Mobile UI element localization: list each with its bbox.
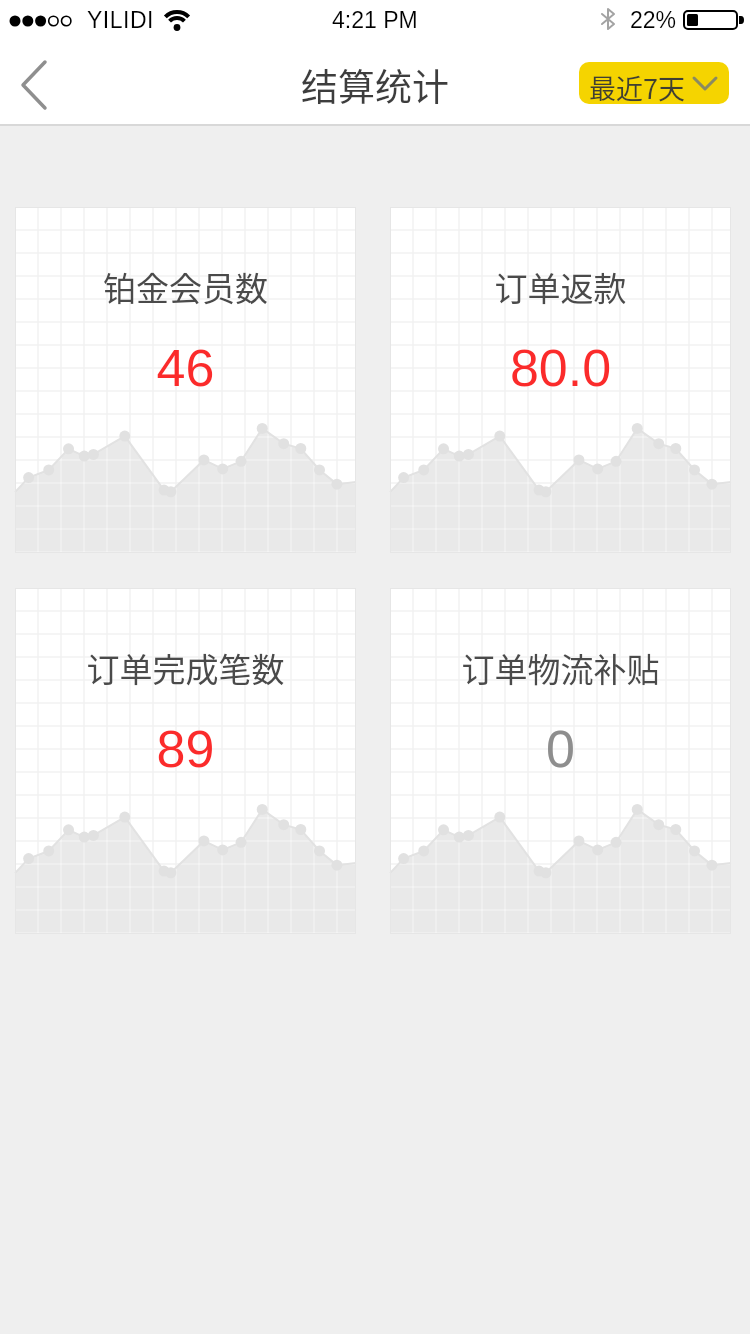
staticText: 0 xyxy=(390,720,731,778)
button[interactable] xyxy=(8,54,64,110)
button[interactable]: 订单完成笔数 xyxy=(15,588,356,934)
staticText: 46 xyxy=(15,339,356,397)
button[interactable]: 订单物流补贴 xyxy=(390,588,731,934)
staticText: 22% xyxy=(630,7,677,33)
staticText: 最近7天 xyxy=(589,68,685,104)
staticText: YILIDI xyxy=(87,7,154,33)
button[interactable]: 订单返款 xyxy=(390,207,731,553)
button[interactable]: 铂金会员数 xyxy=(15,207,356,553)
button[interactable]: 最近7天 xyxy=(579,62,729,104)
staticText: 89 xyxy=(15,720,356,778)
staticText: 铂金会员数 xyxy=(15,263,356,311)
staticText: 结算统计 xyxy=(301,58,449,112)
staticText: 订单完成笔数 xyxy=(15,644,356,692)
staticText: 订单物流补贴 xyxy=(390,644,731,692)
staticText: 订单返款 xyxy=(390,263,731,311)
staticText: 80.0 xyxy=(390,339,731,397)
staticText: 4:21 PM xyxy=(332,7,418,33)
